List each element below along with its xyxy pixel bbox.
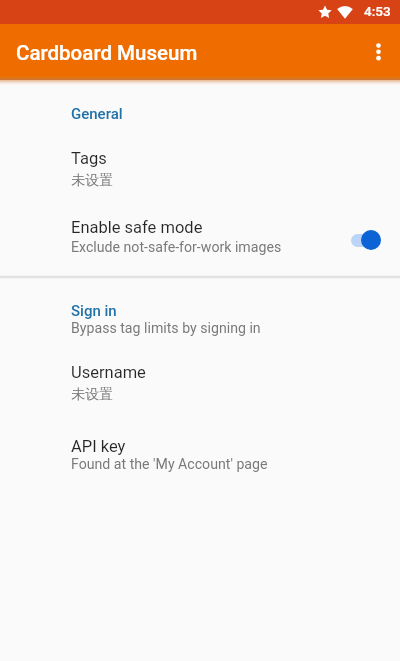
staticText: Bypass tag limits by signing in (71, 320, 261, 337)
button[interactable]: API key (0, 424, 400, 480)
button[interactable]: Username (0, 350, 400, 406)
staticText: Tags (71, 149, 107, 168)
staticText: Sign in (71, 302, 117, 320)
button[interactable]: More options (354, 26, 400, 74)
button[interactable]: Enable safe mode, on (351, 230, 381, 250)
button[interactable]: Sign in (0, 293, 400, 339)
staticText: General (71, 105, 123, 123)
staticText: 未设置 (71, 385, 114, 403)
staticText: 4:53 (364, 3, 391, 19)
staticText: API key (71, 437, 126, 456)
staticText: Exclude not-safe-for-work images (71, 239, 282, 256)
staticText: 未设置 (71, 171, 114, 189)
staticText: Enable safe mode (71, 218, 203, 237)
staticText: Found at the 'My Account' page (71, 456, 268, 473)
button[interactable]: Enable safe mode (0, 205, 400, 263)
other: Starred (318, 5, 332, 19)
other: Wi-Fi (337, 4, 353, 19)
button[interactable]: Tags (0, 136, 400, 192)
staticText: Cardboard Museum (16, 41, 198, 65)
staticText: Username (71, 363, 146, 382)
button[interactable]: General (0, 96, 400, 126)
